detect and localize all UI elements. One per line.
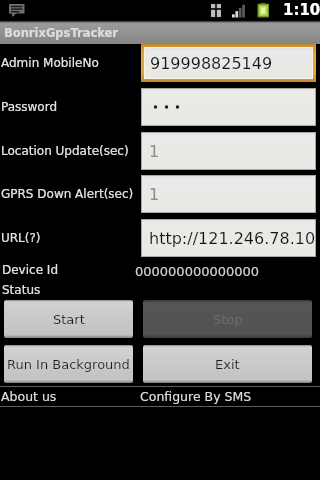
staticText: BonrixGpsTracker: [4, 26, 119, 39]
button[interactable]: Stop: [143, 300, 312, 338]
button[interactable]: Configure By SMS: [140, 386, 320, 407]
button[interactable]: [142, 89, 315, 125]
other: Battery: [257, 3, 270, 18]
button[interactable]: 919998825149: [145, 48, 312, 78]
staticText: 919998825149: [150, 54, 273, 73]
staticText: Location Update(sec): [1, 144, 129, 158]
staticText: Device Id: [2, 263, 59, 277]
button[interactable]: Exit: [143, 345, 312, 383]
button[interactable]: Start: [4, 300, 133, 338]
staticText: Status: [2, 283, 41, 297]
staticText: About us: [1, 389, 57, 404]
staticText: GPRS Down Alert(sec): [1, 187, 134, 201]
staticText: URL(?): [1, 231, 41, 245]
button[interactable]: Run In Background: [4, 345, 133, 383]
staticText: 000000000000000: [135, 264, 260, 279]
button[interactable]: http://121.246.78.10: [142, 220, 315, 256]
staticText: Run In Background: [7, 357, 130, 372]
staticText: Configure By SMS: [140, 389, 252, 404]
staticText: Password: [1, 100, 58, 114]
other: New message: [9, 4, 25, 17]
button[interactable]: 1: [142, 176, 315, 212]
staticText: 1:10: [283, 1, 320, 18]
staticText: 1: [149, 142, 160, 161]
staticText: http://121.246.78.10: [149, 229, 315, 248]
staticText: Admin MobileNo: [1, 56, 99, 70]
other: Signal strength: [232, 4, 246, 18]
staticText: Start: [53, 312, 85, 327]
button[interactable]: 1: [142, 133, 315, 169]
staticText: 1: [149, 185, 160, 204]
staticText: Exit: [215, 357, 240, 372]
button[interactable]: About us: [0, 386, 140, 407]
staticText: Stop: [213, 312, 243, 327]
other: SD card: [211, 4, 222, 17]
